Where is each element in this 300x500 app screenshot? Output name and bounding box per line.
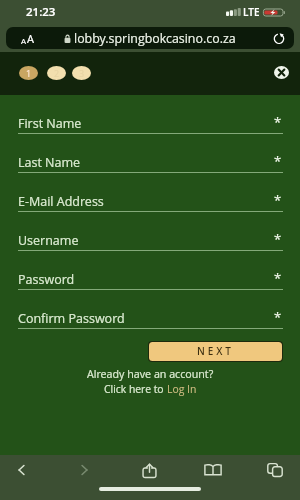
staticText: A bbox=[27, 31, 34, 46]
staticText: 2 bbox=[54, 67, 60, 79]
staticText: Click here to bbox=[104, 382, 167, 396]
button[interactable]: Password bbox=[18, 264, 283, 303]
staticText: 1 bbox=[26, 67, 32, 79]
button[interactable]: Reload bbox=[270, 29, 288, 47]
button[interactable]: Username bbox=[18, 225, 283, 264]
staticText: E-Mail Address bbox=[18, 193, 104, 210]
staticText: Confirm Password bbox=[18, 310, 125, 327]
staticText: A bbox=[21, 35, 27, 46]
staticText: * bbox=[274, 191, 282, 209]
button[interactable]: Share bbox=[132, 455, 166, 485]
button[interactable]: 2 bbox=[47, 66, 66, 80]
staticText: * bbox=[274, 269, 282, 287]
staticText: Log In bbox=[167, 382, 197, 396]
button[interactable]: E-Mail Address bbox=[18, 186, 283, 225]
button[interactable]: Back bbox=[4, 455, 38, 485]
button[interactable]: Close bbox=[274, 66, 289, 79]
button[interactable]: Tabs bbox=[258, 455, 292, 485]
button[interactable]: Text size bbox=[14, 28, 40, 48]
button[interactable]: Click here to bbox=[104, 382, 197, 396]
staticText: * bbox=[274, 308, 282, 326]
button[interactable]: NEXT bbox=[149, 342, 282, 361]
button[interactable]: Forward bbox=[67, 455, 101, 485]
staticText: lobby.springbokcasino.co.za bbox=[74, 30, 236, 47]
staticText: Password bbox=[18, 271, 75, 288]
button[interactable]: lobby.springbokcasino.co.za bbox=[6, 27, 294, 49]
staticText: First Name bbox=[18, 115, 82, 132]
staticText: * bbox=[274, 230, 282, 248]
staticText: Already have an account? bbox=[87, 367, 214, 382]
staticText: 21:23 bbox=[26, 4, 56, 20]
button[interactable]: 1 bbox=[19, 66, 38, 80]
button[interactable]: 3 bbox=[72, 66, 91, 80]
staticText: Username bbox=[18, 232, 79, 249]
button[interactable]: Confirm Password bbox=[18, 303, 283, 342]
staticText: 3 bbox=[79, 67, 85, 79]
button[interactable]: First Name bbox=[18, 108, 283, 147]
staticText: Last Name bbox=[18, 154, 81, 171]
staticText: * bbox=[274, 152, 282, 170]
button[interactable]: Bookmarks bbox=[196, 455, 230, 485]
staticText: NEXT bbox=[197, 344, 234, 358]
staticText: LTE bbox=[243, 5, 260, 19]
staticText: * bbox=[274, 113, 282, 131]
button[interactable]: Last Name bbox=[18, 147, 283, 186]
